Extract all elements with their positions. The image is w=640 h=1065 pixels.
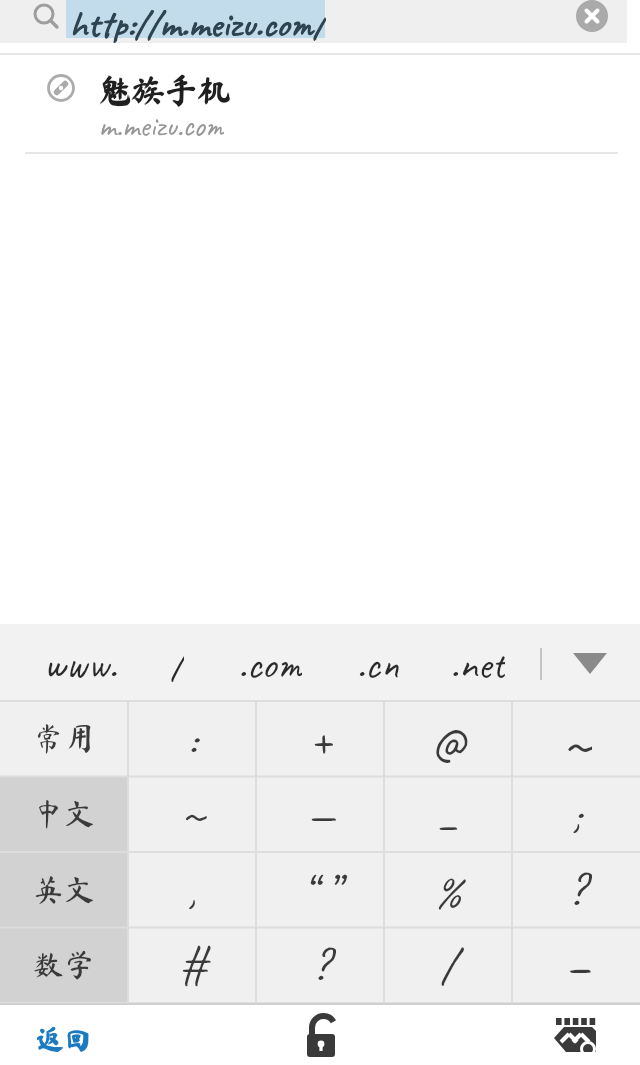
staticText: 返回 (35, 1025, 92, 1053)
staticText: 中文 (33, 798, 95, 829)
staticText: % (434, 861, 462, 919)
staticText: http://m.meizu.com/ (69, 1, 325, 43)
staticText: 魅族手机 (98, 73, 230, 106)
staticText: 魅族手机 (98, 74, 230, 107)
staticText: http://m.meizu.com/ (70, 0, 326, 42)
staticText: – (564, 929, 589, 1000)
staticText: 常用 (33, 723, 95, 754)
staticText: 魅族手机 (99, 73, 231, 106)
staticText: m.meizu.com (98, 106, 224, 142)
staticText: — (306, 782, 335, 845)
staticText: / (440, 935, 456, 995)
staticText: ~ (180, 778, 205, 849)
staticText: _ (437, 784, 459, 844)
staticText: @ (431, 706, 465, 772)
staticText: 英文 (33, 874, 95, 905)
staticText: ? (567, 861, 585, 919)
staticText: ; (571, 785, 581, 843)
staticText: / (170, 638, 184, 686)
staticText: , (187, 861, 197, 919)
staticText: www. (43, 638, 117, 686)
staticText: # (179, 936, 205, 994)
staticText: 返回 (36, 1024, 93, 1052)
staticText: ? (311, 936, 329, 994)
staticText: : (187, 710, 197, 768)
staticText: .net (450, 638, 505, 686)
staticText: .cn (356, 638, 399, 686)
staticText: “ ” (302, 861, 338, 919)
staticText: http://m.meizu.com/ (69, 0, 325, 42)
staticText: + (309, 707, 332, 770)
staticText: .com (238, 638, 302, 686)
staticText: 数学 (33, 949, 95, 980)
staticText: ~ (561, 701, 592, 776)
staticText: 返回 (35, 1024, 92, 1052)
